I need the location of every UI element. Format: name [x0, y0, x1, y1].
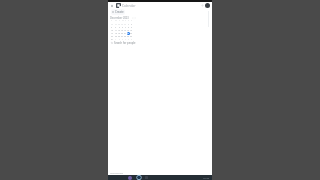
staticText: 31 [111, 38, 114, 41]
staticText: M [115, 19, 117, 22]
button[interactable]: 11 [114, 29, 118, 32]
button[interactable]: 18 [114, 32, 118, 35]
button[interactable]: 26 [118, 35, 121, 38]
button[interactable]: 25 [114, 35, 118, 38]
staticText: 5 [128, 38, 130, 41]
button[interactable]: 26 [110, 22, 114, 26]
button[interactable]: 13 [121, 29, 124, 32]
staticText: 30 [124, 23, 127, 26]
button[interactable]: 30 [130, 35, 133, 38]
button[interactable]: 22 [127, 32, 130, 35]
button[interactable]: 17 [110, 32, 114, 35]
staticText: Create [115, 10, 124, 14]
button[interactable]: 2 [130, 22, 133, 26]
staticText: 15 [127, 29, 130, 32]
staticText: 4 [115, 26, 117, 29]
button[interactable]: 14 [124, 29, 127, 32]
button[interactable]: App [128, 176, 132, 180]
staticText: 25 [115, 35, 118, 38]
button[interactable]: Browser [136, 175, 142, 180]
button[interactable]: 19 [118, 32, 121, 35]
button[interactable]: 15 [127, 29, 130, 32]
staticText: 20 [121, 32, 124, 35]
button[interactable]: 29 [127, 35, 130, 38]
button[interactable]: 21 [124, 32, 127, 35]
button[interactable]: Search for people [108, 41, 140, 45]
button[interactable]: 29 [121, 22, 124, 26]
button[interactable]: Settings [201, 4, 204, 7]
staticText: 13 [121, 29, 124, 32]
staticText: 6 [131, 38, 133, 41]
staticText: 2 [119, 38, 121, 41]
staticText: 7 [125, 26, 127, 29]
button[interactable]: 3 [121, 38, 124, 41]
button[interactable]: 4 [114, 26, 118, 29]
staticText: 21 [124, 32, 127, 35]
staticText: 29 [121, 23, 124, 26]
staticText: S [111, 19, 113, 22]
staticText: F [128, 19, 129, 22]
button[interactable]: 4 [124, 38, 127, 41]
staticText: 19 [118, 32, 121, 35]
button[interactable]: 8 [127, 26, 130, 29]
staticText: 1 [115, 38, 117, 41]
staticText: December 2023 [110, 16, 129, 19]
staticText: 6 [122, 26, 124, 29]
button[interactable]: 3 [110, 26, 114, 29]
button[interactable]: 6 [121, 26, 124, 29]
staticText: 10 [111, 29, 114, 32]
button[interactable]: 1 [127, 22, 130, 26]
button[interactable]: Main menu [110, 4, 114, 8]
button[interactable]: 5 [118, 26, 121, 29]
staticText: 11 [115, 29, 118, 32]
button[interactable]: 1 [114, 38, 118, 41]
button[interactable]: 5 [127, 38, 130, 41]
staticText: calendar.goo [110, 172, 124, 175]
staticText: 24 [111, 35, 114, 38]
button[interactable]: 30 [124, 22, 127, 26]
button[interactable]: 24 [110, 35, 114, 38]
button[interactable]: 6 [130, 38, 133, 41]
staticText: 23 [130, 32, 133, 35]
staticText: 17 [111, 32, 114, 35]
staticText: 5 [119, 26, 121, 29]
staticText: S [131, 19, 133, 22]
button[interactable]: 31 [110, 38, 114, 41]
button[interactable]: 7 [124, 26, 127, 29]
staticText: 18 [115, 32, 118, 35]
staticText: 1 [128, 23, 130, 26]
staticText: 14 [124, 29, 127, 32]
staticText: 29 [127, 35, 130, 38]
staticText: 28 [124, 35, 127, 38]
button[interactable]: 12 [118, 29, 121, 32]
button[interactable]: 16 [130, 29, 133, 32]
button[interactable]: 28 [118, 22, 121, 26]
staticText: 16 [130, 29, 133, 32]
staticText: 4 [125, 38, 127, 41]
staticText: T [125, 19, 127, 22]
staticText: 10:24 [203, 176, 210, 179]
staticText: 26 [118, 35, 121, 38]
staticText: 27 [121, 35, 124, 38]
staticText: 8 [128, 26, 130, 29]
button[interactable]: 27 [121, 35, 124, 38]
button[interactable]: 10 [110, 29, 114, 32]
staticText: 3 [111, 26, 113, 29]
button[interactable]: Create [111, 9, 125, 15]
staticText: W [122, 19, 124, 22]
button[interactable]: 27 [114, 22, 118, 26]
button[interactable]: 20 [121, 32, 124, 35]
staticText: 3 [122, 38, 124, 41]
staticText: 30 [130, 35, 133, 38]
button[interactable]: Google Account [205, 3, 210, 8]
staticText: 9 [131, 26, 133, 29]
staticText: 2 [131, 23, 133, 26]
button[interactable]: 23 [130, 32, 133, 35]
button[interactable]: 2 [118, 38, 121, 41]
button[interactable]: 9 [130, 26, 133, 29]
button[interactable]: 28 [124, 35, 127, 38]
staticText: 12 [118, 29, 121, 32]
